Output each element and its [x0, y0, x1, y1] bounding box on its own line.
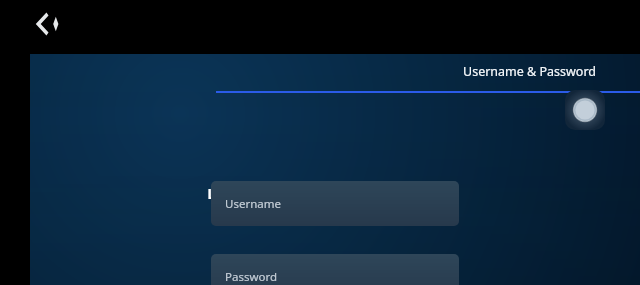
staticText: Username & Password	[463, 63, 597, 80]
button[interactable]: Account	[565, 90, 605, 130]
staticText: Login with Username & Password	[207, 185, 433, 203]
button[interactable]: Password	[211, 254, 459, 285]
staticText: Password	[225, 269, 278, 285]
button[interactable]: Username & Password	[210, 54, 640, 93]
staticText: Username	[225, 196, 281, 212]
button[interactable]: Brand logo	[30, 6, 66, 42]
button[interactable]: Username	[211, 181, 459, 226]
